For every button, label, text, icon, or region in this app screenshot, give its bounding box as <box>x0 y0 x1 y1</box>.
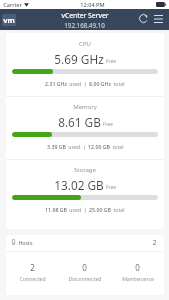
button[interactable]: 0 <box>58 252 111 295</box>
button[interactable]: Hosts <box>6 235 164 250</box>
staticText: Free <box>106 184 116 191</box>
staticText: 2.31 GHz <box>45 80 67 87</box>
staticText: CPU <box>79 40 91 48</box>
staticText: 11.98 GB <box>45 206 67 213</box>
button[interactable]: Menu <box>154 15 163 23</box>
staticText: 192.168.49.10 <box>64 21 105 29</box>
staticText: total <box>113 80 125 87</box>
staticText: Free <box>103 121 113 128</box>
staticText: Memory <box>73 103 97 111</box>
staticText: vCenter Server <box>61 11 109 20</box>
staticText: 8.61 GB <box>58 114 101 130</box>
staticText: 8.00 GHz <box>89 80 111 87</box>
staticText: Storage <box>74 166 96 174</box>
staticText: 2 <box>30 262 35 273</box>
staticText: Free <box>106 58 116 65</box>
staticText: used | <box>68 143 86 150</box>
button[interactable]: Memory <box>6 96 164 159</box>
staticText: 0 <box>82 262 87 273</box>
button[interactable]: 2 <box>6 252 58 295</box>
staticText: 25.00 GB <box>89 206 111 213</box>
staticText: Maintenance <box>122 275 154 282</box>
staticText: used | <box>69 206 87 213</box>
staticText: total <box>112 143 124 150</box>
staticText: 12.00 GB <box>88 143 110 150</box>
staticText: 3.39 GB <box>47 143 66 150</box>
button[interactable]: Storage <box>6 159 164 222</box>
staticText: Carrier <box>3 1 22 9</box>
staticText: 12:04 PM <box>80 1 105 9</box>
staticText: Disconnected <box>68 275 102 282</box>
staticText: 0 <box>135 262 140 273</box>
staticText: vm <box>3 15 15 25</box>
button[interactable]: Virtual machines <box>2 14 16 26</box>
staticText: total <box>113 206 125 213</box>
staticText: used | <box>69 80 87 87</box>
staticText: 2 <box>152 237 157 247</box>
staticText: 5.69 GHz <box>54 51 104 67</box>
staticText: 13.02 GB <box>54 177 104 193</box>
staticText: Hosts <box>18 239 33 246</box>
button[interactable]: CPU <box>6 33 164 96</box>
button[interactable]: Refresh <box>139 14 148 23</box>
staticText: Connected <box>19 275 46 282</box>
button[interactable]: 0 <box>111 252 164 295</box>
